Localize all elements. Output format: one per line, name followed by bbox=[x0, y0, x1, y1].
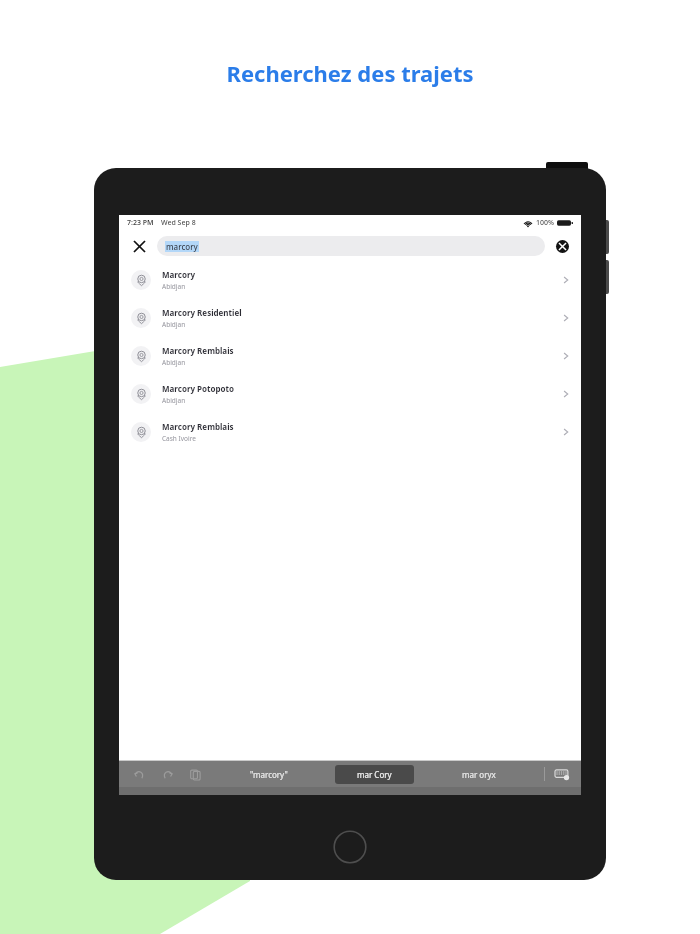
button[interactable]: Close bbox=[129, 236, 149, 256]
staticText: Abidjan bbox=[162, 358, 186, 367]
staticText: "marcory" bbox=[250, 769, 288, 780]
staticText: Abidjan bbox=[162, 320, 186, 329]
staticText: mar Cory bbox=[357, 769, 392, 780]
button[interactable]: Marcory Residentiel bbox=[119, 299, 581, 337]
staticText: 7:23 PM bbox=[127, 218, 154, 228]
staticText: Abidjan bbox=[162, 282, 186, 291]
staticText: Abidjan bbox=[162, 396, 186, 405]
button[interactable]: Marcory Remblais bbox=[119, 413, 581, 451]
button[interactable]: Undo bbox=[131, 766, 147, 782]
button[interactable]: Redo bbox=[159, 766, 175, 782]
staticText: Recherchez des trajets bbox=[226, 58, 474, 88]
staticText: Wed Sep 8 bbox=[161, 218, 196, 228]
button[interactable]: Clear text bbox=[553, 237, 571, 255]
button[interactable]: marcory bbox=[157, 236, 545, 256]
staticText: mar oryx bbox=[462, 769, 496, 780]
button[interactable]: mar Cory bbox=[335, 765, 414, 784]
button[interactable]: Marcory Remblais bbox=[119, 337, 581, 375]
staticText: Marcory bbox=[162, 269, 196, 280]
staticText: Marcory Potopoto bbox=[162, 383, 235, 394]
button[interactable]: Marcory Potopoto bbox=[119, 375, 581, 413]
button[interactable]: Hide keyboard bbox=[553, 765, 571, 783]
button[interactable]: Marcory bbox=[119, 261, 581, 299]
staticText: Cash Ivoire bbox=[162, 434, 196, 443]
staticText: marcory bbox=[166, 241, 198, 252]
staticText: Marcory Remblais bbox=[162, 345, 234, 356]
staticText: Marcory Remblais bbox=[162, 421, 234, 432]
button[interactable]: Paste bbox=[187, 766, 203, 782]
staticText: 100% bbox=[536, 218, 554, 228]
button[interactable]: "marcory" bbox=[240, 766, 298, 783]
staticText: Marcory Residentiel bbox=[162, 307, 242, 318]
button[interactable]: mar oryx bbox=[452, 766, 506, 783]
